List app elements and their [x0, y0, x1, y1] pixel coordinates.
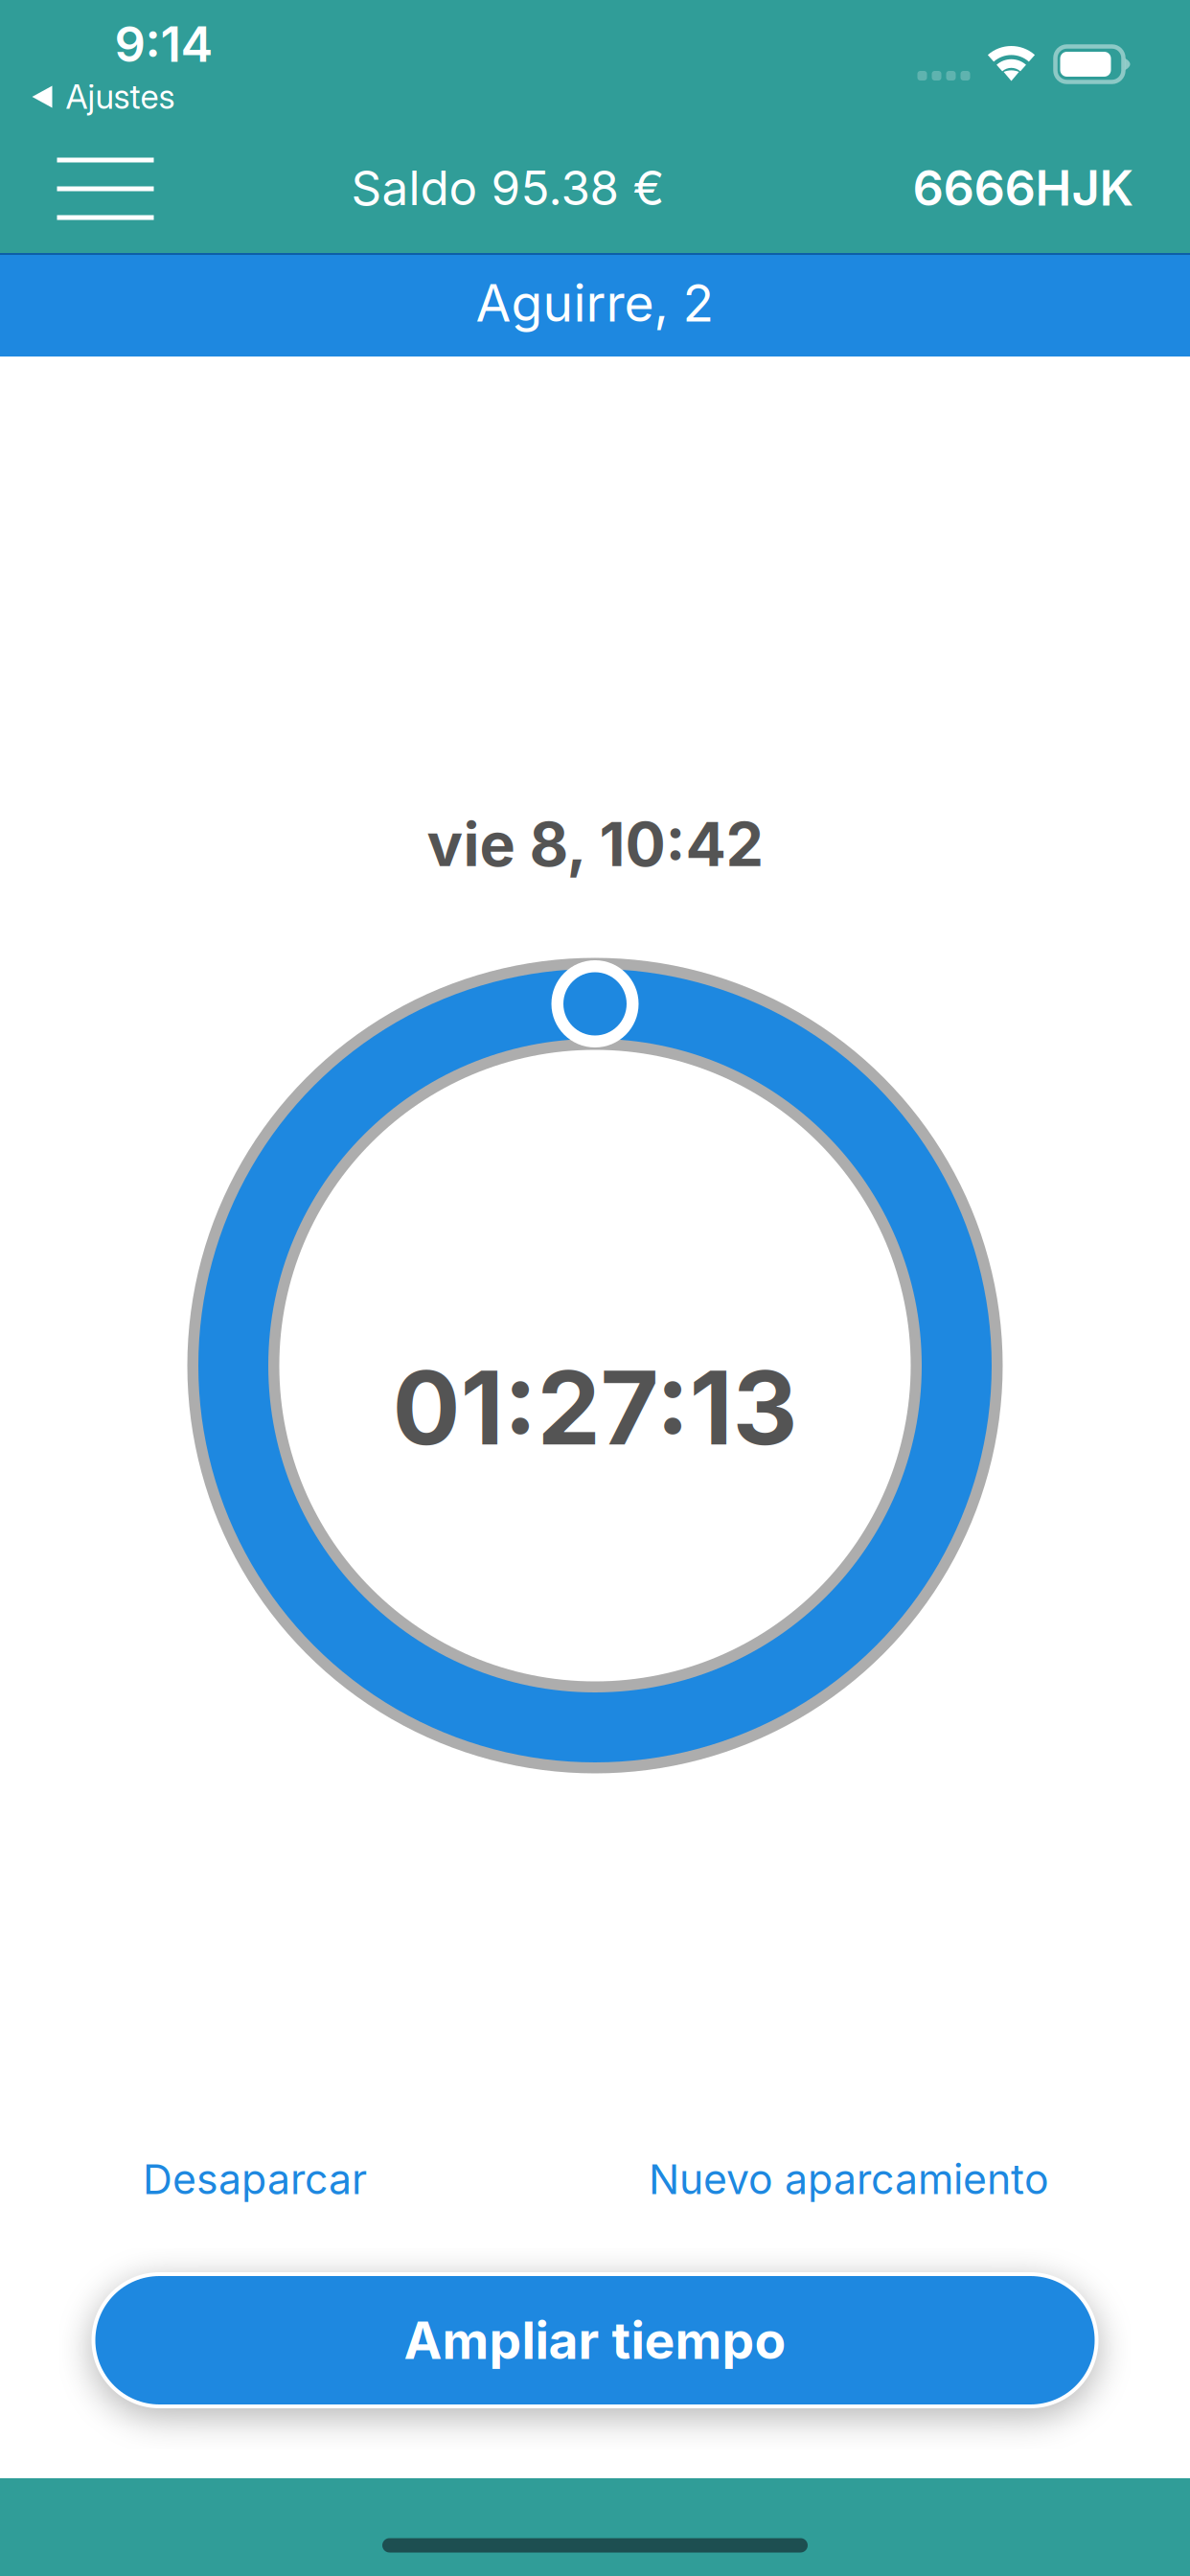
staticText: Aguirre, 2	[476, 272, 714, 334]
staticText: Saldo 95.38 €	[351, 159, 664, 216]
button[interactable]: Desaparcar	[126, 2139, 384, 2219]
button[interactable]: Nuevo aparcamiento	[631, 2139, 1066, 2219]
staticText: 6666HJK	[913, 158, 1134, 217]
button[interactable]: 6666HJK	[899, 145, 1147, 231]
staticText: 01:27:13	[392, 1347, 798, 1469]
staticText: 9:14	[114, 15, 213, 73]
button[interactable]: Ampliar tiempo	[92, 2272, 1098, 2408]
button[interactable]: Menu	[19, 126, 192, 252]
staticText: Nuevo aparcamiento	[649, 2155, 1049, 2204]
staticText: Ajustes	[66, 77, 175, 117]
staticText: Desaparcar	[143, 2155, 367, 2204]
button[interactable]: Back to Ajustes	[19, 67, 188, 126]
button[interactable]: Saldo 95.38 €	[338, 146, 678, 230]
staticText: vie 8, 10:42	[427, 808, 763, 881]
button[interactable]: Aguirre, 2	[0, 251, 1190, 355]
staticText: Ampliar tiempo	[404, 2309, 786, 2371]
